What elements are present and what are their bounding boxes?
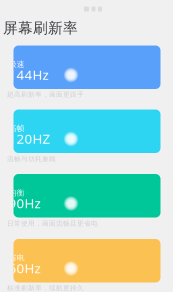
staticText: 120HZ [8,130,50,147]
staticText: 日常使用，画面流畅且更省电 [7,219,98,228]
staticText: 144Hz [8,66,48,83]
staticText: 高帧 [8,123,24,133]
button[interactable]: 省电 [13,239,160,282]
staticText: 超高刷新率，画面更跟手 [7,90,84,99]
staticText: 标准刷新率，续航更持久 [7,284,84,292]
staticText: 屏幕刷新率 [3,19,78,37]
staticText: 90Hz [8,194,40,212]
staticText: 极速 [8,59,24,69]
staticText: 60Hz [8,259,40,277]
button[interactable]: 高帧 [13,109,160,153]
button[interactable]: 均衡 [13,174,160,217]
button[interactable]: 极速 [13,45,160,89]
staticText: 流畅与功耗兼顾 [7,155,56,163]
staticText: 省电 [8,253,24,263]
staticText: 均衡 [8,188,24,198]
